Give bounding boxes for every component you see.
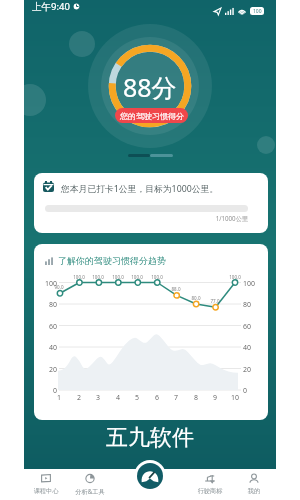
staticText: 100.0 xyxy=(127,274,147,280)
staticText: 20 xyxy=(36,365,57,375)
staticText: 100.0 xyxy=(147,274,167,280)
staticText: 8 xyxy=(188,393,204,403)
staticText: 40 xyxy=(36,343,57,353)
staticText: 了解你的驾驶习惯得分趋势 xyxy=(58,255,166,266)
staticText: 20 xyxy=(243,365,264,375)
staticText: 88分 xyxy=(123,70,177,104)
staticText: 1/1000公里 xyxy=(203,214,248,222)
staticText: 3 xyxy=(90,393,106,403)
staticText: 五九软件 xyxy=(106,424,194,452)
staticText: 100 xyxy=(253,8,262,15)
staticText: 90.0 xyxy=(49,284,69,290)
staticText: 您的驾驶习惯得分 xyxy=(120,111,184,121)
button[interactable]: 您的驾驶习惯得分 xyxy=(115,108,188,123)
staticText: 100 xyxy=(36,279,57,289)
staticText: 80 xyxy=(243,300,264,310)
staticText: 77.0 xyxy=(205,298,225,304)
staticText: 0 xyxy=(36,386,57,396)
staticText: 100 xyxy=(243,279,264,289)
staticText: 您本月已打卡1公里，目标为1000公里。 xyxy=(61,183,219,195)
button[interactable]: 我的 xyxy=(232,474,276,495)
staticText: 100.0 xyxy=(108,274,128,280)
staticText: 分析&工具 xyxy=(68,487,112,495)
staticText: 6 xyxy=(149,393,165,403)
staticText: 60 xyxy=(36,322,57,332)
staticText: 60 xyxy=(243,322,264,332)
staticText: 5 xyxy=(129,393,145,403)
button[interactable]: 了解你的驾驶习惯得分趋势 xyxy=(34,244,268,420)
staticText: 0 xyxy=(243,386,264,396)
staticText: 10 xyxy=(227,393,243,403)
button[interactable]: 您本月已打卡1公里，目标为1000公里。 xyxy=(34,173,268,233)
button[interactable]: 行程记录 xyxy=(134,460,166,492)
staticText: 40 xyxy=(243,343,264,353)
staticText: 80.0 xyxy=(186,295,206,301)
staticText: 我的 xyxy=(232,487,276,495)
staticText: 88.0 xyxy=(166,286,186,292)
staticText: 7 xyxy=(168,393,184,403)
staticText: 100.0 xyxy=(225,274,245,280)
staticText: 4 xyxy=(110,393,126,403)
staticText: 100.0 xyxy=(88,274,108,280)
staticText: 1 xyxy=(51,393,67,403)
button[interactable]: 行驶商标 xyxy=(188,474,232,495)
staticText: 行驶商标 xyxy=(188,487,232,495)
staticText: 2 xyxy=(71,393,87,403)
staticText: 上午9:40 xyxy=(32,0,70,13)
button[interactable]: 课程中心 xyxy=(24,474,68,495)
staticText: 9 xyxy=(207,393,223,403)
staticText: 80 xyxy=(36,300,57,310)
button[interactable]: 分析&工具 xyxy=(68,474,112,495)
staticText: 100.0 xyxy=(69,274,89,280)
staticText: 课程中心 xyxy=(24,487,68,495)
